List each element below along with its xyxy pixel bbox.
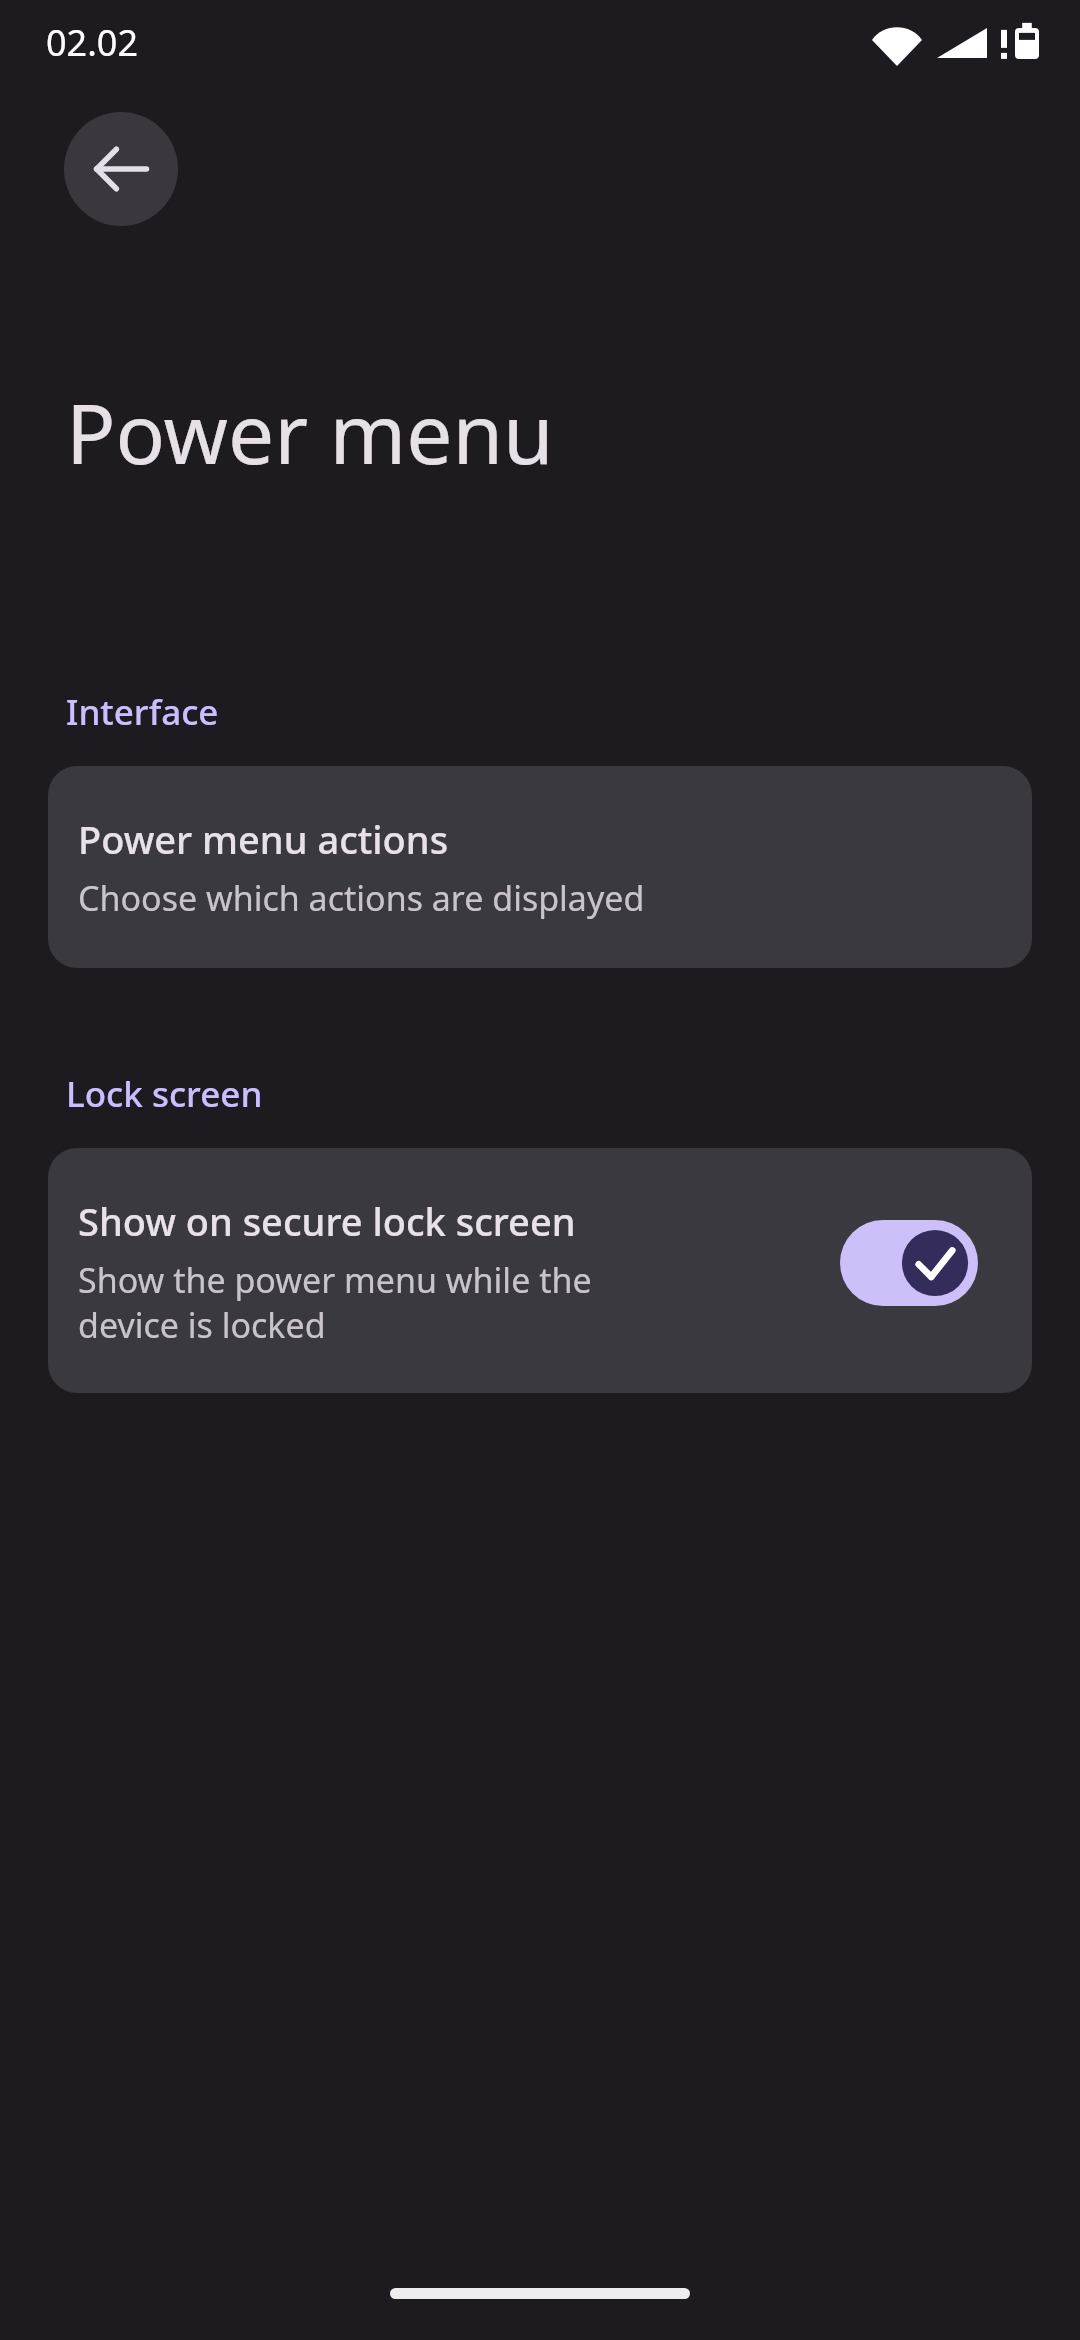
button[interactable]: Power menu actions (48, 766, 1032, 968)
staticText: Show the power menu while the device is … (78, 1257, 698, 1347)
staticText: Choose which actions are displayed (78, 875, 645, 921)
staticText: Power menu (66, 376, 554, 488)
button[interactable]: Show on secure lock screen toggle (834, 1214, 984, 1312)
staticText: Lock screen (66, 1070, 263, 1118)
staticText: Power menu actions (78, 813, 449, 865)
staticText: 02.02 (46, 18, 139, 67)
staticText: Show on secure lock screen (78, 1195, 576, 1247)
staticText: Interface (66, 688, 219, 736)
button[interactable]: Show on secure lock screen (48, 1148, 1032, 1393)
button[interactable]: Back (64, 112, 178, 226)
